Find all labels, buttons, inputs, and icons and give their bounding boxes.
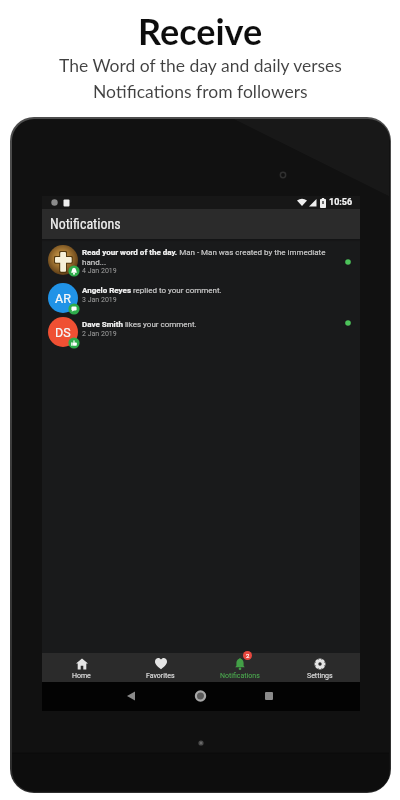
staticText: The Word of the day and daily verses — [59, 55, 342, 76]
staticText: Dave Smith likes your comment. — [82, 320, 197, 329]
staticText: Angelo Reyes replied to your comment. — [82, 286, 222, 295]
staticText: Read your word of the day. Man - Man was… — [82, 248, 342, 266]
button[interactable]: AR — [48, 283, 360, 315]
staticText: Notifications — [220, 672, 260, 680]
staticText: 3 Jan 2019 — [82, 296, 117, 304]
button[interactable] — [186, 682, 214, 711]
staticText: Settings — [307, 672, 333, 680]
button[interactable]: Favorites — [121, 653, 200, 682]
button[interactable]: Read your word of the day. Man - Man was… — [48, 245, 360, 277]
staticText: Receive — [138, 9, 263, 52]
button[interactable] — [117, 682, 145, 711]
staticText: 2 — [246, 652, 250, 659]
staticText: Home — [72, 672, 91, 680]
staticText: DS — [55, 325, 71, 340]
button[interactable]: Settings — [280, 653, 360, 682]
button[interactable]: 2 — [200, 653, 280, 682]
staticText: Notifications — [50, 216, 121, 232]
staticText: Notifications from followers — [93, 81, 308, 102]
staticText: Favorites — [146, 672, 175, 680]
staticText: 10:56 — [329, 197, 353, 208]
button[interactable]: Home — [42, 653, 121, 682]
button[interactable] — [255, 682, 283, 711]
staticText: AR — [55, 291, 71, 306]
staticText: 2 Jan 2019 — [82, 330, 117, 338]
staticText: 4 Jan 2019 — [82, 267, 117, 275]
button[interactable]: DS — [48, 317, 360, 349]
